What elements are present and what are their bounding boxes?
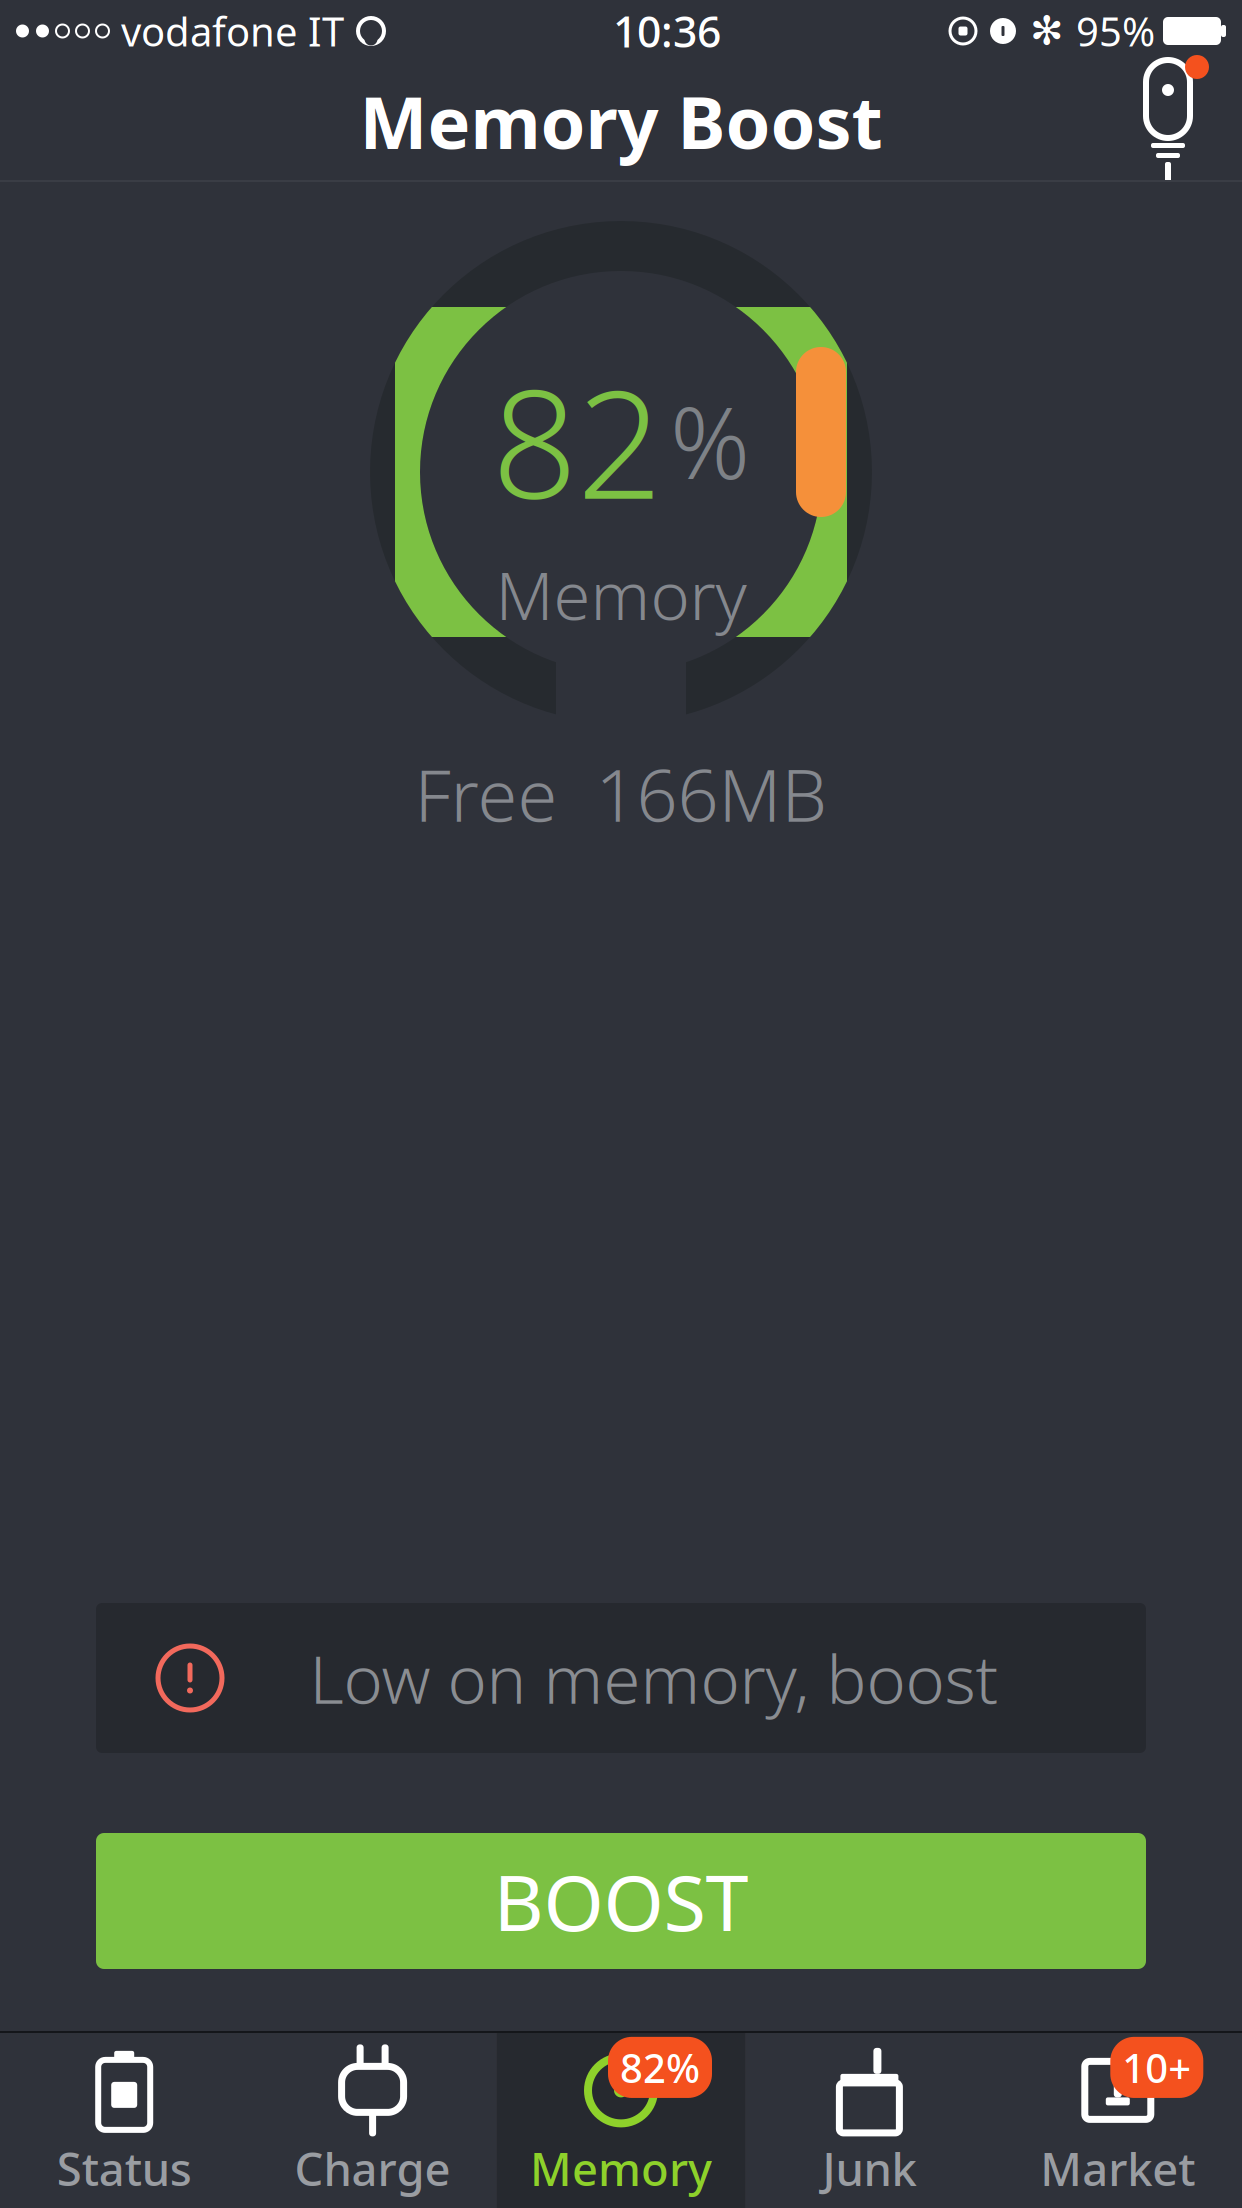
staticText: Memory: [530, 2138, 712, 2199]
staticText: ✻: [1030, 8, 1064, 54]
button[interactable]: Low on memory, boost: [96, 1603, 1146, 1753]
staticText: 95%: [1076, 4, 1155, 57]
button[interactable]: 82%: [497, 2033, 745, 2208]
staticText: 10:36: [613, 3, 721, 59]
button[interactable]: 10+: [994, 2033, 1242, 2208]
staticText: Market: [1040, 2138, 1195, 2199]
button[interactable]: Charge: [248, 2033, 497, 2208]
staticText: Memory: [495, 550, 746, 638]
button[interactable]: Status: [0, 2033, 248, 2208]
staticText: Status: [57, 2138, 192, 2199]
staticText: Charge: [295, 2138, 451, 2199]
staticText: Memory Boost: [359, 73, 882, 169]
staticText: Low on memory, boost: [309, 1634, 998, 1722]
staticText: 82: [492, 342, 662, 540]
staticText: 82%: [620, 2041, 700, 2094]
staticText: BOOST: [493, 1850, 748, 1952]
staticText: Junk: [822, 2138, 916, 2199]
button[interactable]: Junk: [745, 2033, 994, 2208]
button[interactable]: BOOST: [96, 1833, 1146, 1969]
staticText: Free 166MB: [414, 746, 827, 842]
staticText: %: [670, 375, 750, 506]
button[interactable]: Boost rocket: [1108, 41, 1228, 201]
staticText: vodafone IT: [121, 4, 344, 57]
staticText: 10+: [1122, 2041, 1191, 2094]
